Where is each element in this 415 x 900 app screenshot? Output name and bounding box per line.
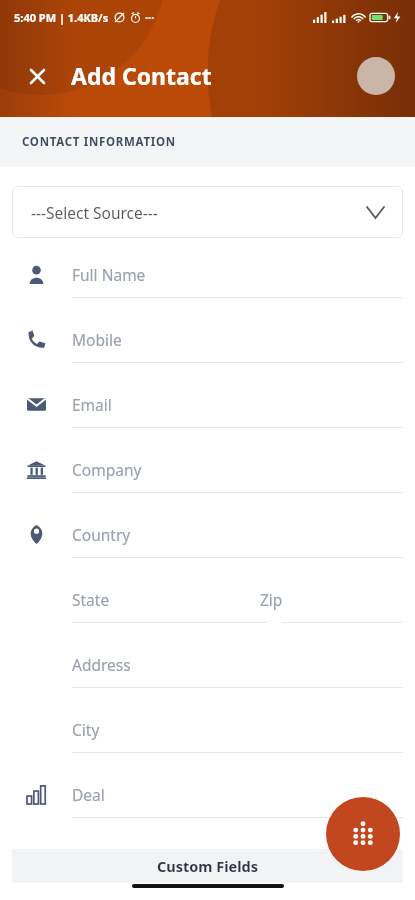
- staticText: Address: [72, 654, 131, 675]
- button[interactable]: Mobile: [0, 317, 415, 382]
- button[interactable]: ---Select Source---: [12, 186, 403, 238]
- button[interactable]: Deal: [0, 772, 415, 837]
- staticText: Email: [72, 394, 112, 415]
- button[interactable]: City: [0, 707, 415, 772]
- button[interactable]: Close: [20, 59, 54, 93]
- button[interactable]: State: [0, 577, 256, 622]
- button[interactable]: Email: [0, 382, 415, 447]
- button[interactable]: More options: [326, 797, 400, 871]
- staticText: Deal: [72, 784, 105, 805]
- staticText: Country: [72, 524, 131, 545]
- button[interactable]: Company: [0, 447, 415, 512]
- staticText: ···: [145, 10, 155, 25]
- staticText: 5:40 PM | 1.4KB/s: [14, 10, 109, 25]
- staticText: Custom Fields: [157, 856, 258, 876]
- staticText: Add Contact: [71, 60, 212, 91]
- staticText: Mobile: [72, 329, 122, 350]
- staticText: Zip: [260, 589, 283, 610]
- button[interactable]: Country: [0, 512, 415, 577]
- staticText: Full Name: [72, 264, 146, 285]
- button[interactable]: Zip: [256, 577, 415, 622]
- staticText: CONTACT INFORMATION: [22, 134, 176, 150]
- button[interactable]: Address: [0, 642, 415, 707]
- button[interactable]: Full Name: [0, 252, 415, 317]
- staticText: Company: [72, 459, 142, 480]
- staticText: ---Select Source---: [31, 202, 158, 223]
- staticText: City: [72, 719, 100, 740]
- button[interactable]: Profile: [357, 57, 395, 95]
- button[interactable]: Custom Fields: [12, 849, 403, 883]
- staticText: State: [72, 589, 110, 610]
